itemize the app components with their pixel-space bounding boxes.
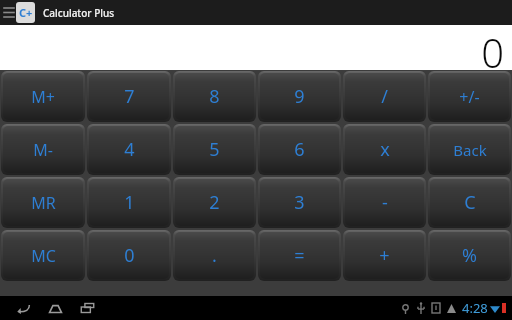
staticText: -: [382, 190, 388, 215]
button[interactable]: M-: [1, 124, 85, 175]
button[interactable]: 6: [258, 124, 341, 175]
button[interactable]: Back: [428, 124, 511, 175]
staticText: =: [294, 243, 305, 268]
staticText: 1: [124, 190, 135, 215]
button[interactable]: x: [343, 124, 426, 175]
button[interactable]: 7: [87, 71, 171, 122]
staticText: MC: [31, 245, 56, 267]
button[interactable]: /: [343, 71, 426, 122]
staticText: Back: [453, 140, 487, 160]
button[interactable]: 5: [173, 124, 256, 175]
staticText: .: [212, 243, 217, 268]
staticText: M+: [31, 86, 55, 108]
button[interactable]: MC: [1, 230, 85, 281]
button[interactable]: +/-: [428, 71, 511, 122]
button[interactable]: C: [428, 177, 511, 228]
button[interactable]: Back: [10, 296, 36, 320]
staticText: 0: [124, 243, 135, 268]
staticText: C+: [19, 5, 33, 20]
staticText: +/-: [459, 86, 480, 108]
button[interactable]: =: [258, 230, 341, 281]
staticText: 3: [294, 190, 305, 215]
button[interactable]: +: [343, 230, 426, 281]
button[interactable]: -: [343, 177, 426, 228]
button[interactable]: 1: [87, 177, 171, 228]
button[interactable]: 0: [0, 25, 512, 70]
staticText: +: [379, 243, 390, 268]
button[interactable]: 9: [258, 71, 341, 122]
button[interactable]: Home: [42, 296, 68, 320]
staticText: /: [381, 84, 388, 109]
staticText: M-: [33, 139, 53, 161]
button[interactable]: C+: [16, 2, 35, 23]
button[interactable]: %: [428, 230, 511, 281]
staticText: C: [464, 190, 476, 215]
button[interactable]: 3: [258, 177, 341, 228]
staticText: x: [380, 137, 390, 162]
button[interactable]: 0: [87, 230, 171, 281]
button[interactable]: Menu: [2, 0, 16, 25]
button[interactable]: 8: [173, 71, 256, 122]
staticText: 7: [124, 84, 135, 109]
staticText: 9: [294, 84, 305, 109]
staticText: 2: [209, 190, 220, 215]
button[interactable]: MR: [1, 177, 85, 228]
staticText: 4:28: [462, 299, 488, 317]
staticText: 5: [209, 137, 220, 162]
staticText: 8: [209, 84, 220, 109]
button[interactable]: .: [173, 230, 256, 281]
staticText: Calculator Plus: [43, 6, 115, 20]
staticText: MR: [31, 192, 56, 214]
button[interactable]: Recent apps: [74, 296, 100, 320]
staticText: 0: [481, 25, 504, 68]
staticText: 6: [294, 137, 305, 162]
staticText: %: [462, 243, 477, 268]
button[interactable]: 2: [173, 177, 256, 228]
button[interactable]: M+: [1, 71, 85, 122]
staticText: 4: [124, 137, 135, 162]
button[interactable]: 4: [87, 124, 171, 175]
